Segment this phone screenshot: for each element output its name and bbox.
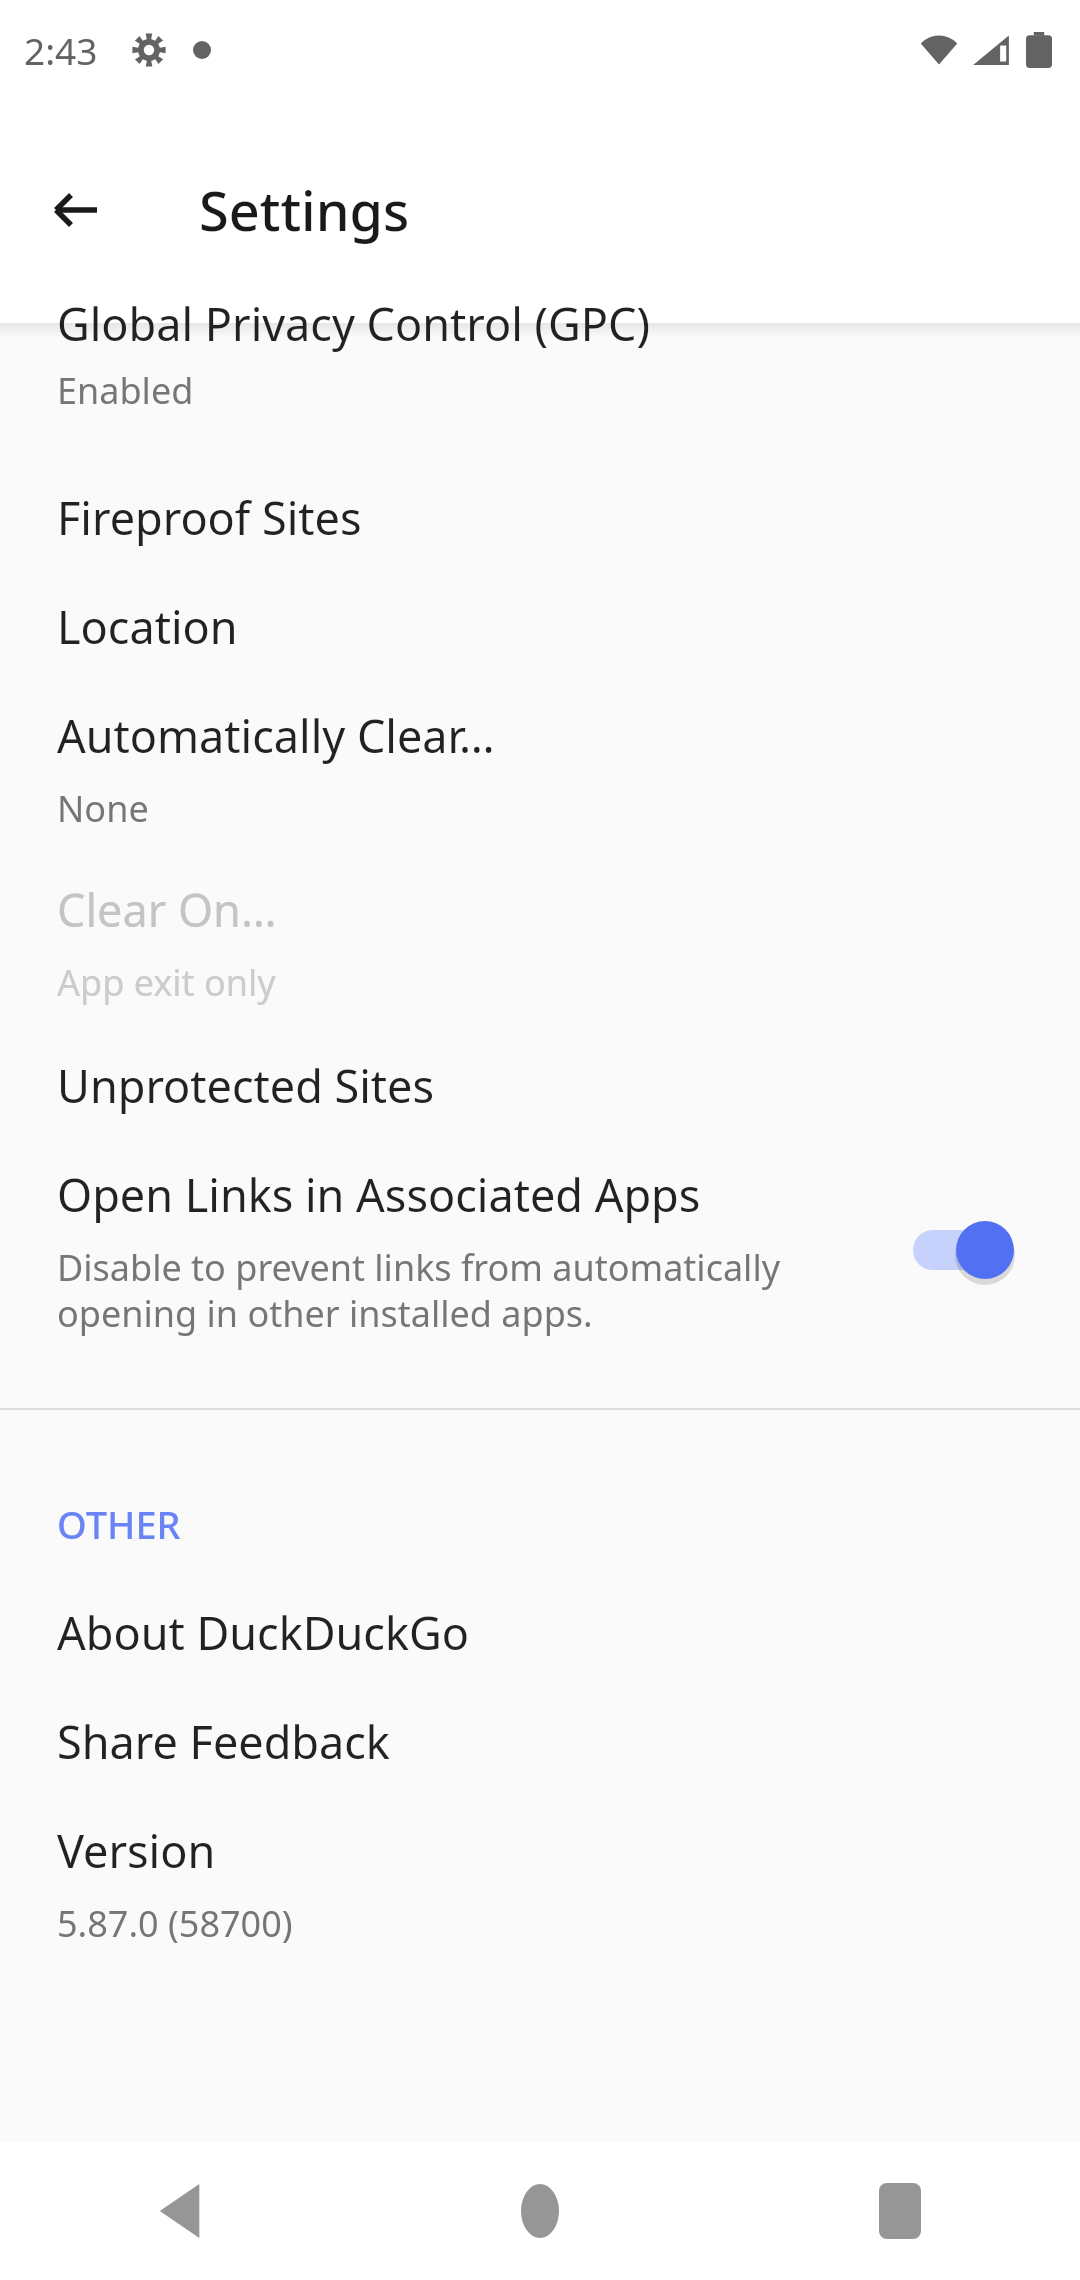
staticText: Settings [199,173,410,247]
button[interactable]: Home [360,2142,720,2280]
button[interactable]: Back [0,2142,360,2280]
button[interactable]: Share Feedback [0,1711,1080,1820]
staticText: 2:43 [24,25,98,75]
staticText: Enabled [57,366,194,415]
button[interactable]: Clear On… [0,879,1080,1055]
button[interactable]: Location [0,596,1080,705]
staticText: Unprotected Sites [57,1055,435,1116]
staticText: None [57,784,149,833]
staticText: 5.87.0 (58700) [57,1899,293,1948]
staticText: Disable to prevent links from automatica… [57,1243,889,1338]
staticText: App exit only [57,958,276,1007]
button[interactable]: Global Privacy Control (GPC) [0,323,1080,435]
staticText: Location [57,596,238,657]
staticText: Global Privacy Control (GPC) [57,293,650,354]
button[interactable]: Back [28,162,124,258]
staticText: Clear On… [57,879,277,940]
staticText: Version [57,1820,216,1881]
staticText: Share Feedback [57,1711,390,1772]
staticText: About DuckDuckGo [57,1602,469,1663]
button[interactable]: Automatically Clear… [0,705,1080,879]
button[interactable]: Unprotected Sites [0,1055,1080,1164]
staticText: Open Links in Associated Apps [57,1164,701,1225]
staticText: OTHER [57,1498,181,1550]
button[interactable]: About DuckDuckGo [0,1602,1080,1711]
button[interactable]: Fireproof Sites [0,435,1080,596]
staticText: Automatically Clear… [57,705,495,766]
button[interactable]: Open Links in Associated Apps toggle [913,1212,1023,1288]
button[interactable]: Version [0,1820,1080,1988]
staticText: Fireproof Sites [57,487,362,548]
button[interactable]: Recent apps [720,2142,1080,2280]
button[interactable]: Open Links in Associated Apps [0,1164,1080,1378]
